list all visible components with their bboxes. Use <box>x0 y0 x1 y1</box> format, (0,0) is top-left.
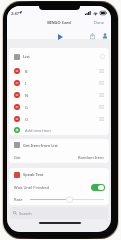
button[interactable]: G <box>9 101 109 113</box>
button[interactable]: Share <box>87 30 98 41</box>
staticText: Wait Until Finished <box>14 185 50 190</box>
staticText: B <box>25 69 28 74</box>
button[interactable]: Done <box>91 17 107 27</box>
button[interactable]: List <box>9 48 109 65</box>
button[interactable]: Get <box>9 151 109 163</box>
button[interactable]: Add new item <box>9 125 109 135</box>
staticText: Rate <box>14 197 23 202</box>
staticText: Speak Text <box>23 172 44 177</box>
button[interactable]: Run shortcut <box>54 30 67 43</box>
staticText: Random Item <box>78 155 104 160</box>
button[interactable]: Add person <box>99 30 110 41</box>
button[interactable]: Speak Text <box>9 168 109 181</box>
staticText: Add new item <box>25 128 51 133</box>
staticText: O <box>25 117 29 122</box>
button[interactable]: B <box>9 65 109 77</box>
button[interactable]: Search <box>10 207 108 219</box>
button[interactable]: I <box>9 77 109 89</box>
staticText: G <box>25 105 28 110</box>
staticText: Done <box>94 20 105 25</box>
button[interactable]: Get Item from List <box>9 139 109 151</box>
staticText: Search <box>19 211 32 216</box>
staticText: I <box>25 81 27 86</box>
button[interactable]: N <box>9 89 109 101</box>
staticText: BINGO Card <box>7 20 111 25</box>
button[interactable]: O <box>9 113 109 125</box>
staticText: 2:47 <box>11 11 19 16</box>
button[interactable]: Rate <box>9 193 109 205</box>
staticText: N <box>25 93 29 98</box>
staticText: List <box>23 54 30 59</box>
staticText: Get Item from List <box>23 143 58 148</box>
staticText: Get <box>14 155 21 160</box>
button[interactable]: Wait Until Finished <box>9 181 109 193</box>
